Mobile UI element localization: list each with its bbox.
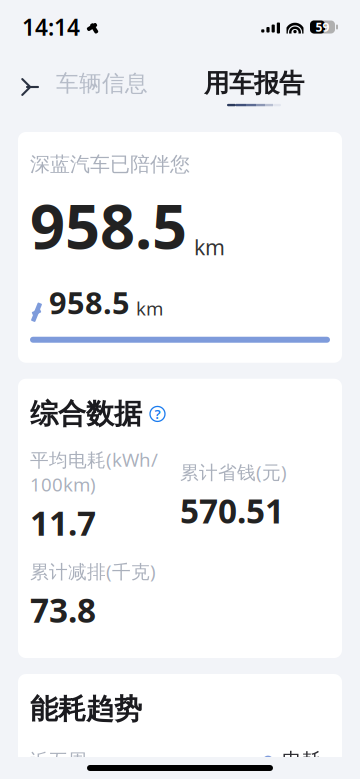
staticText: 累计减排(千克) [30, 559, 156, 584]
staticText: 电耗 [282, 748, 322, 773]
staticText: 14:14 [22, 12, 80, 42]
staticText: 车辆信息 [56, 70, 148, 97]
button[interactable]: 车辆信息 [52, 70, 152, 104]
staticText: 平均电耗(kWh/100km) [30, 447, 158, 497]
staticText: 570.51 [180, 488, 284, 533]
staticText: 近五周 [30, 749, 87, 772]
staticText: 用车报告 [204, 68, 304, 99]
button[interactable]: 返回 [8, 65, 52, 109]
staticText: km [136, 296, 163, 321]
staticText: 11.7 [30, 501, 96, 545]
button[interactable]: 用车报告 [200, 68, 308, 106]
staticText: km [194, 233, 225, 261]
staticText: 累计省钱(元) [180, 459, 287, 484]
button[interactable]: 综合数据说明 [149, 405, 166, 422]
staticText: 73.8 [30, 588, 96, 632]
staticText: 958.5 [49, 282, 130, 323]
staticText: ? [154, 405, 160, 423]
staticText: 深蓝汽车已陪伴您 [30, 152, 190, 177]
staticText: 综合数据 [30, 397, 142, 431]
staticText: 958.5 [30, 185, 187, 266]
staticText: 能耗趋势 [30, 692, 142, 726]
staticText: 59 [315, 19, 329, 35]
